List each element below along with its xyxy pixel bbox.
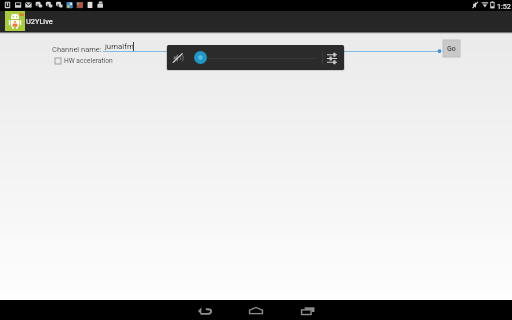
staticText: HW acceleration (64, 57, 113, 65)
staticText: Channel name: (52, 45, 102, 54)
staticText: Go (447, 45, 456, 53)
button[interactable]: HW acceleration (52, 56, 114, 67)
staticText: U2YLive (26, 17, 53, 26)
staticText: jurnalfm (105, 42, 134, 51)
button[interactable]: Back (195, 305, 215, 316)
button[interactable]: Recent apps (298, 305, 318, 316)
button[interactable]: Go (443, 40, 460, 57)
button[interactable]: Mute (172, 52, 184, 64)
button[interactable]: Volume (194, 51, 207, 64)
staticText: 1:52 (497, 2, 511, 10)
button[interactable]: Home (246, 305, 266, 316)
button[interactable]: Equalizer settings (324, 50, 340, 66)
